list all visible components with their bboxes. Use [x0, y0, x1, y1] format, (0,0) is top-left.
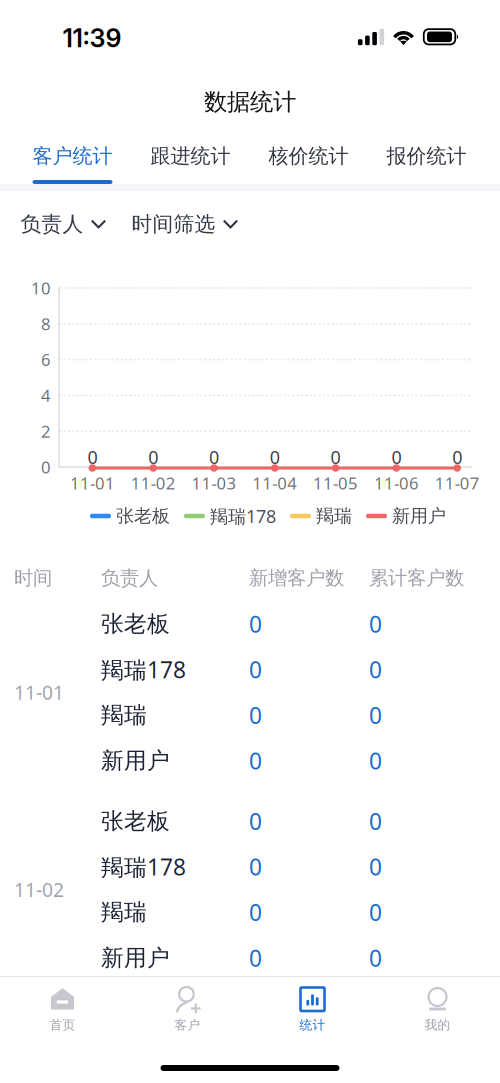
staticText: 0	[249, 806, 262, 837]
staticText: 0	[391, 445, 401, 469]
staticText: 4	[41, 384, 51, 407]
staticText: 张老板	[116, 505, 170, 527]
staticText: 客户统计	[32, 143, 112, 169]
staticText: 6	[41, 348, 51, 371]
button[interactable]: 我的	[375, 977, 500, 1043]
staticText: 0	[249, 745, 262, 776]
staticText: 羯瑞178	[101, 851, 186, 882]
staticText: 0	[41, 456, 51, 478]
staticText: 0	[369, 654, 382, 685]
button[interactable]: 时间筛选	[131, 203, 238, 245]
button[interactable]: 核价统计	[249, 132, 367, 194]
staticText: 羯瑞	[316, 505, 352, 527]
staticText: 羯瑞178	[101, 654, 186, 685]
button[interactable]: 负责人	[20, 203, 106, 245]
button[interactable]: 报价统计	[367, 132, 485, 194]
staticText: 2	[41, 420, 51, 442]
staticText: 张老板	[101, 610, 170, 638]
staticText: 数据统计	[204, 87, 296, 117]
staticText: 新用户	[101, 746, 170, 775]
staticText: 羯瑞178	[210, 504, 276, 528]
staticText: 我的	[424, 1017, 450, 1033]
staticText: 11-01	[70, 472, 115, 494]
staticText: 11-04	[252, 472, 297, 494]
staticText: 新用户	[101, 944, 170, 972]
staticText: 0	[369, 806, 382, 837]
staticText: 0	[249, 897, 262, 928]
staticText: 0	[209, 445, 219, 469]
button[interactable]: 统计	[250, 977, 375, 1043]
staticText: 羯瑞	[101, 701, 147, 729]
staticText: 0	[369, 851, 382, 882]
staticText: 新用户	[392, 505, 446, 527]
staticText: 11-02	[131, 472, 176, 494]
staticText: 核价统计	[268, 143, 348, 169]
staticText: 时间	[14, 566, 52, 590]
staticText: 首页	[49, 1017, 75, 1033]
staticText: 张老板	[101, 807, 170, 835]
staticText: 0	[249, 700, 262, 731]
staticText: 0	[249, 608, 262, 639]
staticText: 0	[270, 445, 280, 469]
staticText: 0	[148, 445, 158, 469]
staticText: 11-05	[313, 472, 358, 494]
staticText: 11-07	[435, 472, 480, 494]
staticText: 统计	[299, 1017, 325, 1033]
staticText: 11-06	[374, 472, 419, 494]
staticText: 0	[87, 445, 97, 469]
staticText: 10	[31, 277, 51, 299]
staticText: 11-03	[191, 472, 236, 494]
staticText: 报价统计	[386, 143, 466, 169]
staticText: 0	[369, 942, 382, 973]
staticText: 0	[249, 942, 262, 973]
staticText: 0	[369, 897, 382, 928]
staticText: 负责人	[101, 566, 158, 590]
staticText: 客户	[174, 1017, 200, 1033]
staticText: 0	[331, 445, 341, 469]
staticText: 0	[249, 654, 262, 685]
staticText: 11-01	[14, 679, 64, 705]
staticText: 11:39	[62, 23, 121, 53]
staticText: 0	[452, 445, 462, 469]
staticText: 羯瑞	[101, 898, 147, 927]
button[interactable]: 客户统计	[13, 132, 131, 194]
staticText: 8	[41, 312, 51, 335]
staticText: 11-02	[14, 876, 64, 903]
staticText: 新增客户数	[249, 566, 344, 590]
staticText: 0	[369, 608, 382, 639]
staticText: 负责人	[20, 211, 83, 237]
staticText: 跟进统计	[150, 143, 230, 169]
button[interactable]: 跟进统计	[131, 132, 249, 194]
staticText: 时间筛选	[131, 211, 215, 237]
staticText: 累计客户数	[369, 566, 464, 590]
staticText: 0	[249, 851, 262, 882]
staticText: 0	[369, 700, 382, 731]
staticText: 0	[369, 745, 382, 776]
button[interactable]: 首页	[0, 977, 125, 1043]
button[interactable]: 客户	[125, 977, 250, 1043]
